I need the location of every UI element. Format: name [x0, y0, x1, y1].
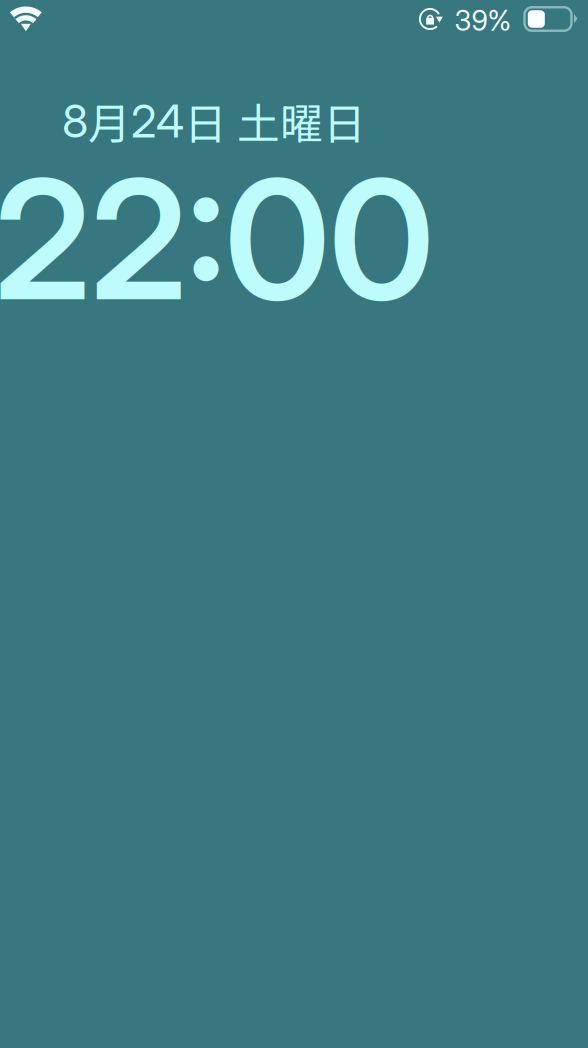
- button[interactable]: Rotation Lock: [416, 7, 440, 31]
- staticText: 月: [88, 90, 131, 152]
- button[interactable]: Wi-Fi: [10, 6, 42, 31]
- staticText: 日 土曜日: [184, 90, 366, 152]
- staticText: 22:00: [0, 139, 434, 339]
- staticText: 39%: [454, 4, 511, 37]
- staticText: 24: [131, 93, 184, 148]
- staticText: 8: [62, 93, 88, 148]
